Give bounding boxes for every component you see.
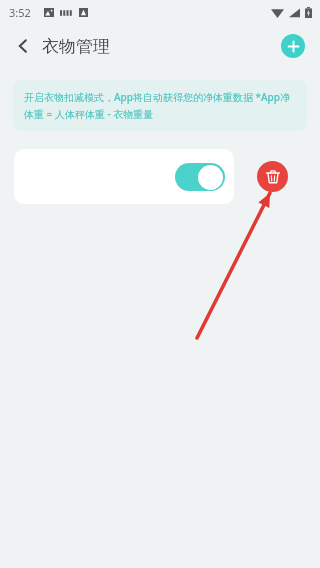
button[interactable]: Toggle clothing deduction xyxy=(14,149,234,204)
staticText: 3:52 xyxy=(9,5,31,20)
staticText: 开启衣物扣减模式，App将自动获得您的净体重数据 *App净体重 = 人体秤体重… xyxy=(24,90,296,121)
staticText: 衣物管理 xyxy=(42,36,110,57)
button[interactable]: Toggle clothing deduction xyxy=(175,163,225,191)
button[interactable]: Add xyxy=(281,34,305,58)
button[interactable]: Delete xyxy=(257,161,288,192)
button[interactable]: Back xyxy=(8,31,38,61)
